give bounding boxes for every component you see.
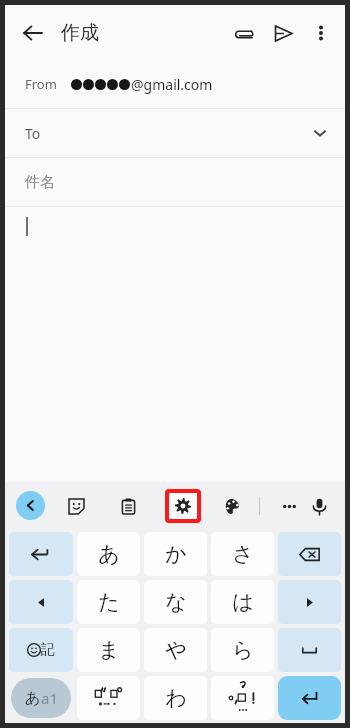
- staticText: 記: [41, 641, 55, 659]
- staticText: To: [25, 124, 41, 143]
- button[interactable]: Space: [278, 628, 341, 672]
- button[interactable]: わ: [144, 676, 207, 720]
- button[interactable]: は: [211, 580, 274, 624]
- button[interactable]: Collapse toolbar: [16, 491, 45, 520]
- button[interactable]: さ: [211, 532, 274, 576]
- button[interactable]: Stickers: [61, 491, 91, 521]
- button[interactable]: Undo: [9, 532, 73, 576]
- button[interactable]: 件名: [5, 158, 345, 206]
- button[interactable]: た: [77, 580, 140, 624]
- button[interactable]: あ: [77, 532, 140, 576]
- staticText: あ: [98, 541, 120, 567]
- staticText: 作成: [61, 21, 99, 45]
- button[interactable]: か: [144, 532, 207, 576]
- button[interactable]: ら: [211, 628, 274, 672]
- button[interactable]: To: [5, 109, 345, 157]
- staticText: ら: [232, 637, 254, 663]
- staticText: @gmail.com: [131, 75, 213, 94]
- button[interactable]: Voice input: [304, 491, 334, 521]
- button[interactable]: Theme: [217, 491, 247, 521]
- staticText: か: [165, 541, 187, 567]
- button[interactable]: Dakuten and small kana: [77, 676, 140, 720]
- staticText: あ: [25, 689, 41, 708]
- staticText: や: [165, 637, 187, 663]
- staticText: From: [25, 75, 57, 93]
- button[interactable]: や: [144, 628, 207, 672]
- staticText: た: [98, 589, 120, 615]
- button[interactable]: Enter: [278, 676, 341, 720]
- staticText: 件名: [25, 173, 55, 192]
- staticText: な: [165, 589, 187, 615]
- button[interactable]: な: [144, 580, 207, 624]
- button[interactable]: More: [274, 491, 304, 521]
- button[interactable]: More options: [303, 15, 339, 51]
- button[interactable]: Back: [13, 13, 53, 53]
- button[interactable]: Punctuation: [211, 676, 274, 720]
- button[interactable]: Cursor right: [278, 580, 341, 624]
- button[interactable]: ま: [77, 628, 140, 672]
- button[interactable]: あ: [11, 678, 71, 718]
- staticText: a1: [41, 688, 58, 708]
- button[interactable]: Settings: [169, 493, 197, 519]
- staticText: わ: [165, 685, 187, 711]
- staticText: さ: [232, 541, 254, 567]
- button[interactable]: Cursor left: [9, 580, 73, 624]
- button[interactable]: Clipboard: [113, 491, 143, 521]
- staticText: ま: [98, 637, 120, 663]
- button[interactable]: Emoji and symbols: [9, 628, 73, 672]
- button[interactable]: Backspace: [278, 532, 341, 576]
- button[interactable]: Send: [263, 13, 303, 53]
- button[interactable]: Attach file: [223, 13, 263, 53]
- button[interactable]: From: [5, 60, 345, 108]
- staticText: は: [232, 589, 254, 615]
